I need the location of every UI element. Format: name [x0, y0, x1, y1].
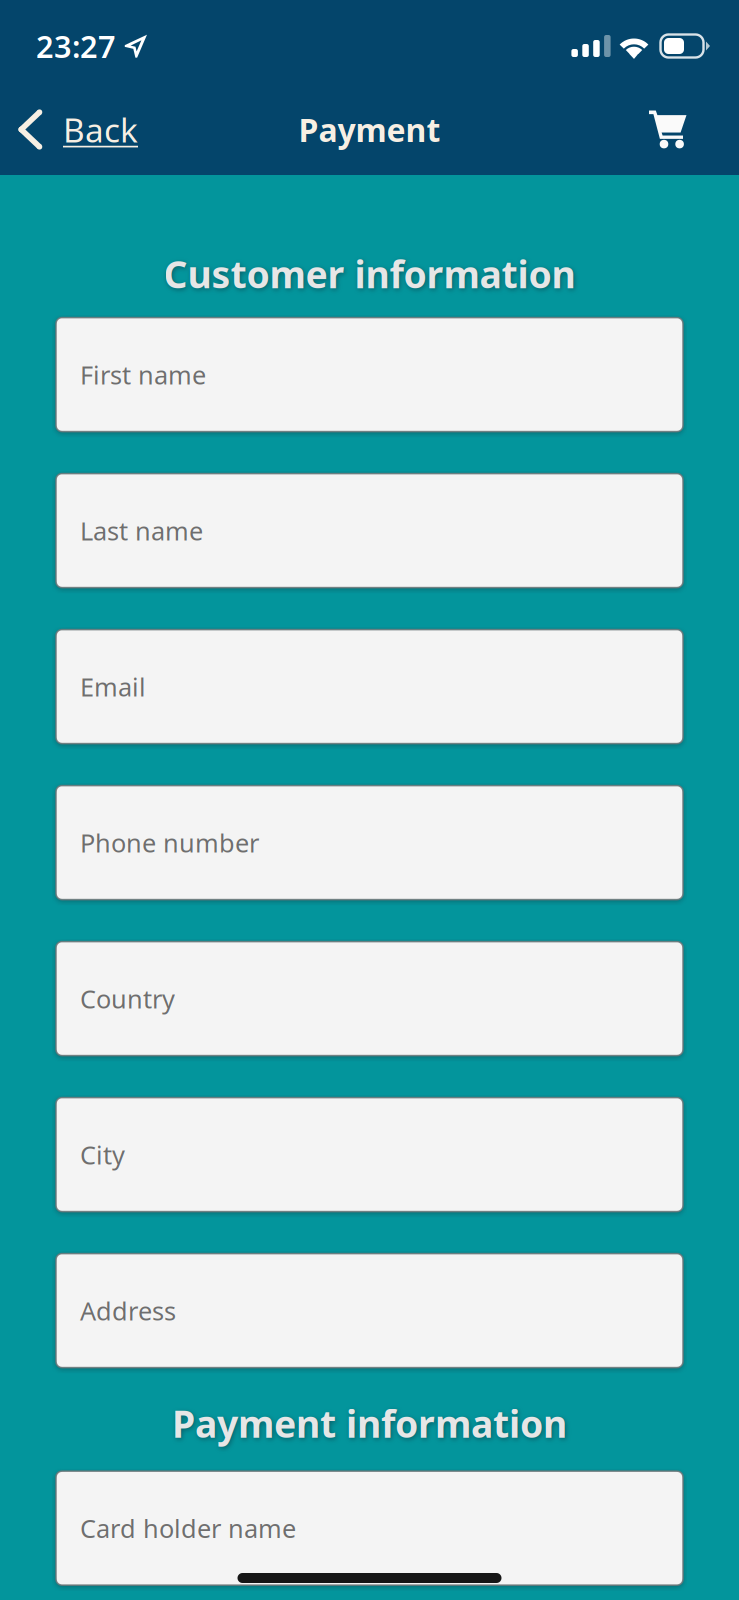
staticText: First name	[80, 358, 206, 391]
staticText: Phone number	[80, 826, 259, 859]
staticText: City	[80, 1138, 125, 1171]
staticText: Card holder name	[80, 1511, 296, 1545]
staticText: Address	[80, 1294, 176, 1327]
button[interactable]: Back	[0, 91, 152, 167]
staticText: Back	[63, 107, 138, 152]
button[interactable]: Country	[56, 942, 683, 1056]
button[interactable]: Last name	[56, 474, 683, 588]
button[interactable]: Cart	[615, 91, 739, 167]
button[interactable]: Email	[56, 630, 683, 744]
button[interactable]: Card holder name	[56, 1471, 683, 1585]
button[interactable]: City	[56, 1098, 683, 1212]
button[interactable]: First name	[56, 318, 683, 432]
staticText: Last name	[80, 514, 203, 547]
staticText: Country	[80, 982, 175, 1015]
button[interactable]: Phone number	[56, 786, 683, 900]
button[interactable]: Address	[56, 1254, 683, 1368]
staticText: Customer information	[163, 249, 575, 299]
staticText: Email	[80, 670, 146, 703]
staticText: Payment information	[172, 1399, 567, 1448]
staticText: 23:27	[36, 26, 116, 66]
staticText: Payment	[298, 108, 440, 151]
